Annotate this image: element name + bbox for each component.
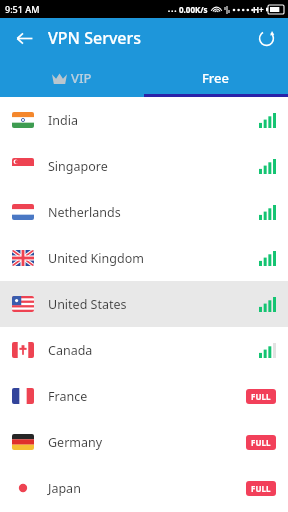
button[interactable]: United Kingdom [0,235,288,281]
staticText: United States [48,296,127,313]
button[interactable]: United States [0,281,288,327]
button[interactable]: Japan [0,465,288,511]
staticText: 9:51 AM [5,3,40,15]
staticText: 0.00K/s [179,4,208,15]
staticText: H+ [253,4,264,15]
staticText: Japan [48,480,81,497]
staticText: VIP [71,69,92,87]
staticText: Singapore [48,158,108,175]
button[interactable]: Refresh [250,22,282,54]
button[interactable]: Free [144,58,288,97]
button[interactable]: Canada [0,327,288,373]
button[interactable]: Germany [0,419,288,465]
button[interactable]: Netherlands [0,189,288,235]
button[interactable]: Back [8,22,40,54]
button[interactable]: VIP [0,58,144,97]
button[interactable]: India [0,97,288,143]
staticText: Netherlands [48,204,121,221]
staticText: FULL [251,483,271,494]
staticText: France [48,388,88,405]
staticText: Germany [48,434,103,451]
button[interactable]: Singapore [0,143,288,189]
staticText: FULL [251,391,271,402]
staticText: VPN Servers [48,27,142,49]
staticText: United Kingdom [48,250,144,267]
staticText: India [48,112,78,129]
staticText: Free [202,69,230,87]
staticText: FULL [251,437,271,448]
button[interactable]: France [0,373,288,419]
staticText: Canada [48,342,93,359]
